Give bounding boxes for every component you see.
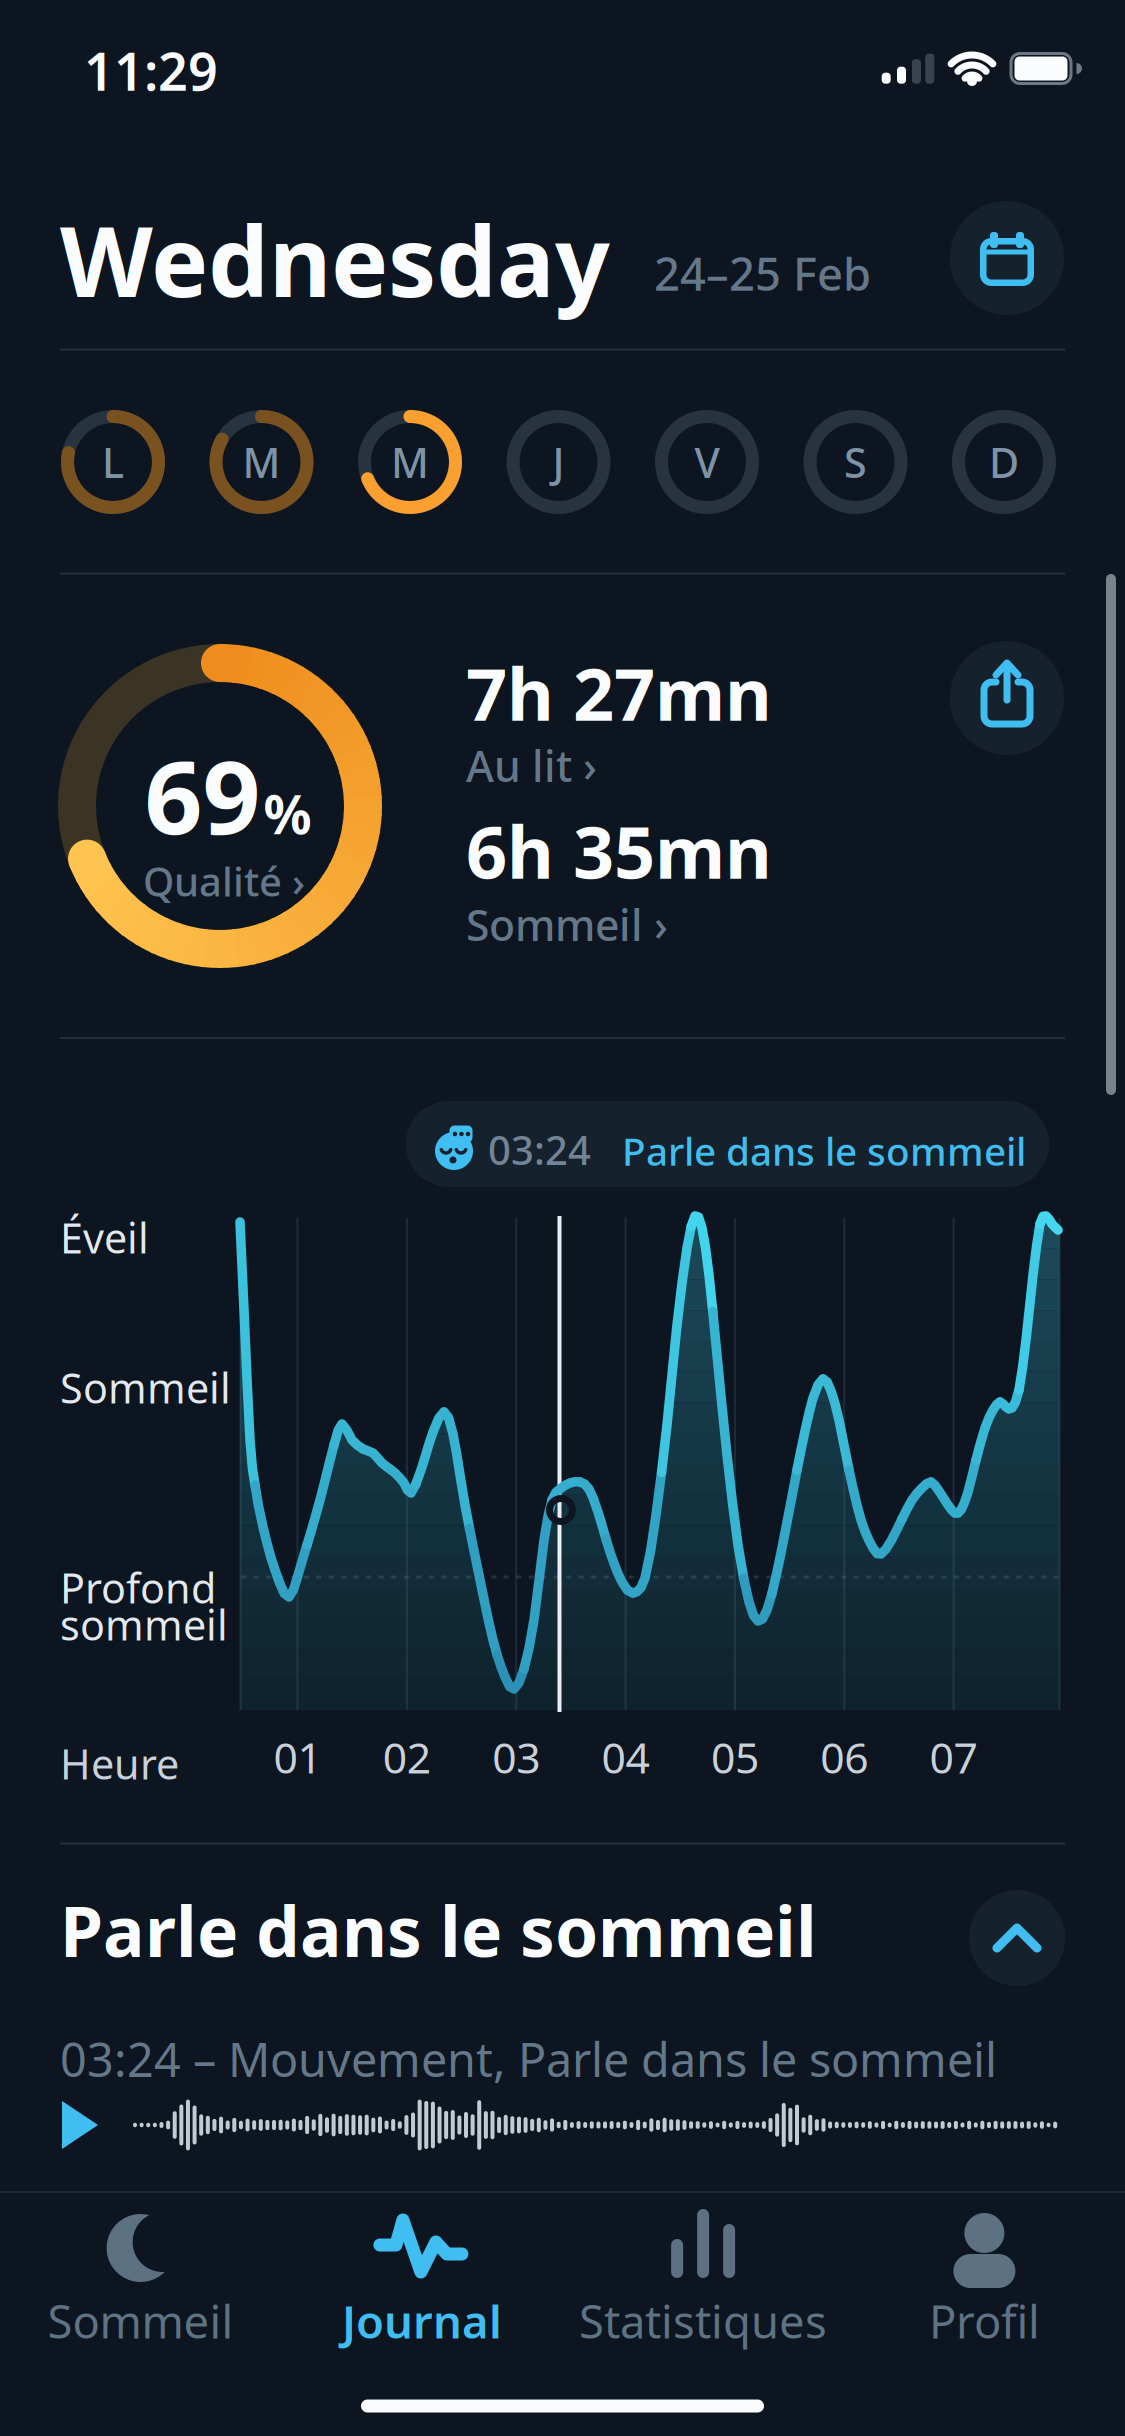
staticText: Wednesday (60, 196, 610, 323)
button[interactable]: V (655, 410, 759, 514)
button[interactable]: S (803, 410, 907, 514)
button[interactable]: Share (950, 641, 1064, 755)
staticText: 04 (601, 1729, 649, 1785)
button[interactable]: Statistiques (563, 2196, 843, 2364)
staticText: Heure (60, 1736, 179, 1791)
staticText: V (694, 435, 719, 489)
button[interactable]: Sommeil › (466, 896, 668, 953)
button[interactable]: M (358, 410, 462, 514)
staticText: 03:24 – Mouvement, Parle dans le sommeil (60, 2028, 997, 2090)
button[interactable]: Qualité › (143, 854, 305, 907)
staticText: 01 (273, 1729, 321, 1785)
staticText: Sommeil (48, 2291, 234, 2351)
staticText: Sommeil (60, 1360, 231, 1415)
staticText: % (263, 778, 311, 849)
staticText: 03:24 (488, 1123, 591, 1176)
staticText: L (102, 435, 124, 489)
staticText: 11:29 (84, 36, 218, 105)
staticText: 7h 27mn (466, 645, 772, 741)
staticText: Parle dans le sommeil (60, 1884, 817, 1976)
staticText: 06 (820, 1729, 868, 1785)
staticText: 6h 35mn (466, 803, 772, 899)
staticText: Au lit › (466, 737, 597, 794)
staticText: D (989, 435, 1019, 489)
staticText: 02 (383, 1729, 431, 1785)
staticText: 69 (144, 728, 260, 862)
button[interactable]: Play (54, 2099, 106, 2151)
button[interactable]: Calendar (950, 201, 1064, 315)
staticText: Éveil (60, 1210, 149, 1265)
staticText: 03 (492, 1729, 540, 1785)
staticText: 07 (930, 1729, 978, 1785)
staticText: 24–25 Feb (654, 243, 871, 303)
button[interactable]: M (209, 410, 313, 514)
button[interactable]: Au lit › (466, 737, 597, 794)
staticText: Profil (929, 2291, 1040, 2351)
staticText: 05 (711, 1729, 759, 1785)
staticText: J (552, 435, 564, 489)
staticText: Journal (342, 2291, 502, 2351)
button[interactable]: Profil (844, 2196, 1124, 2364)
staticText: S (844, 435, 867, 489)
staticText: Qualité › (143, 854, 305, 907)
staticText: M (242, 435, 280, 489)
button[interactable]: D (952, 410, 1056, 514)
button[interactable]: L (61, 410, 165, 514)
staticText: Profond (60, 1560, 216, 1615)
button[interactable]: Collapse (969, 1890, 1065, 1986)
button[interactable]: Journal (282, 2196, 562, 2364)
button[interactable]: J (506, 410, 610, 514)
staticText: sommeil (60, 1597, 228, 1652)
staticText: M (391, 435, 429, 489)
staticText: Statistiques (579, 2291, 827, 2351)
button[interactable]: Sommeil (1, 2196, 281, 2364)
staticText: Parle dans le sommeil (622, 1125, 1026, 1176)
staticText: Sommeil › (466, 896, 668, 953)
